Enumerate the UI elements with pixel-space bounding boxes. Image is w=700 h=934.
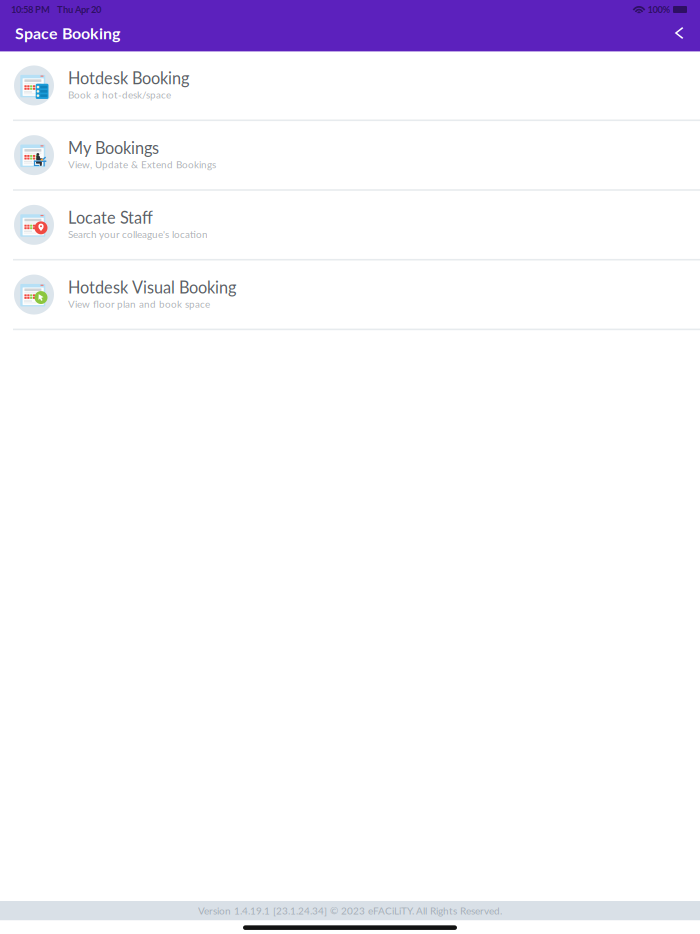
staticText: Space Booking <box>15 23 120 43</box>
staticText: Hotdesk Booking <box>68 68 189 88</box>
staticText: Search your colleague's location <box>68 228 208 240</box>
button[interactable]: Back <box>666 21 692 49</box>
button[interactable]: Hotdesk Booking <box>0 51 700 121</box>
staticText: Locate Staff <box>68 208 153 227</box>
staticText: View, Update & Extend Bookings <box>68 158 216 170</box>
staticText: My Bookings <box>68 138 159 157</box>
staticText: Thu Apr 20 <box>57 4 101 15</box>
staticText: View floor plan and book space <box>68 298 210 310</box>
staticText: 100% <box>647 4 670 15</box>
staticText: Hotdesk Visual Booking <box>68 277 236 297</box>
button[interactable]: Locate Staff <box>0 191 700 260</box>
button[interactable]: Hotdesk Visual Booking <box>0 260 700 330</box>
staticText: Version 1.4.19.1 [23.1.24.34] © 2023 eFA… <box>198 905 502 917</box>
staticText: 10:58 PM <box>11 4 50 15</box>
staticText: Book a hot-desk/space <box>68 89 171 101</box>
button[interactable]: My Bookings <box>0 121 700 191</box>
